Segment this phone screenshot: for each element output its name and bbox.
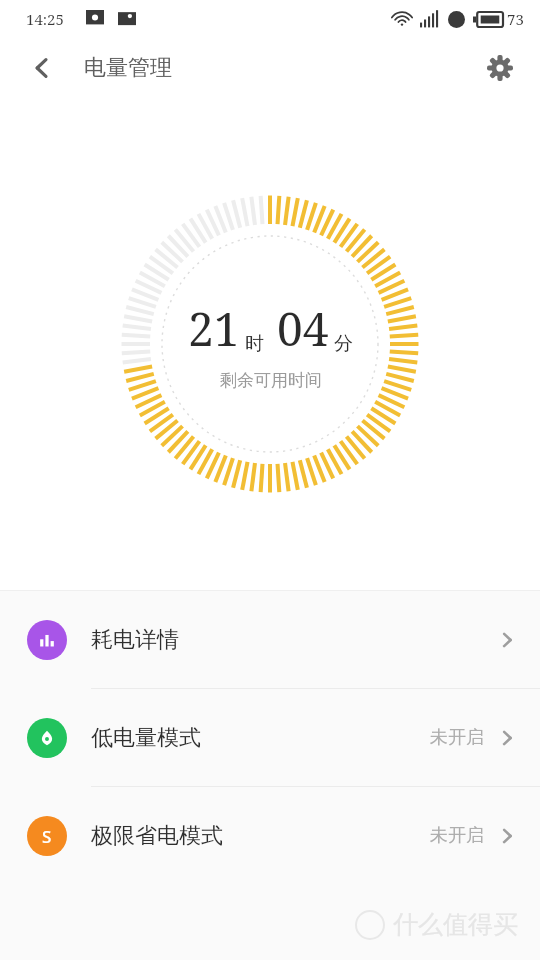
staticText: 21: [188, 297, 240, 360]
staticText: 时: [245, 332, 264, 356]
staticText: 未开启: [430, 824, 484, 847]
staticText: 73: [507, 9, 524, 29]
staticText: 分: [334, 332, 353, 356]
button[interactable]: Settings: [472, 40, 528, 96]
button[interactable]: S: [0, 787, 540, 884]
staticText: 剩余可用时间: [220, 370, 322, 391]
staticText: S: [42, 825, 52, 848]
staticText: 未开启: [430, 726, 484, 749]
button[interactable]: 低电量模式: [0, 689, 540, 787]
staticText: 电量管理: [84, 54, 172, 82]
staticText: 极限省电模式: [91, 822, 223, 850]
button[interactable]: 耗电详情: [0, 591, 540, 689]
staticText: 耗电详情: [91, 626, 179, 654]
staticText: 14:25: [26, 9, 64, 29]
staticText: 04: [277, 297, 329, 360]
button[interactable]: Back: [14, 40, 70, 96]
staticText: 低电量模式: [91, 724, 201, 752]
staticText: 什么值得买: [393, 909, 518, 940]
